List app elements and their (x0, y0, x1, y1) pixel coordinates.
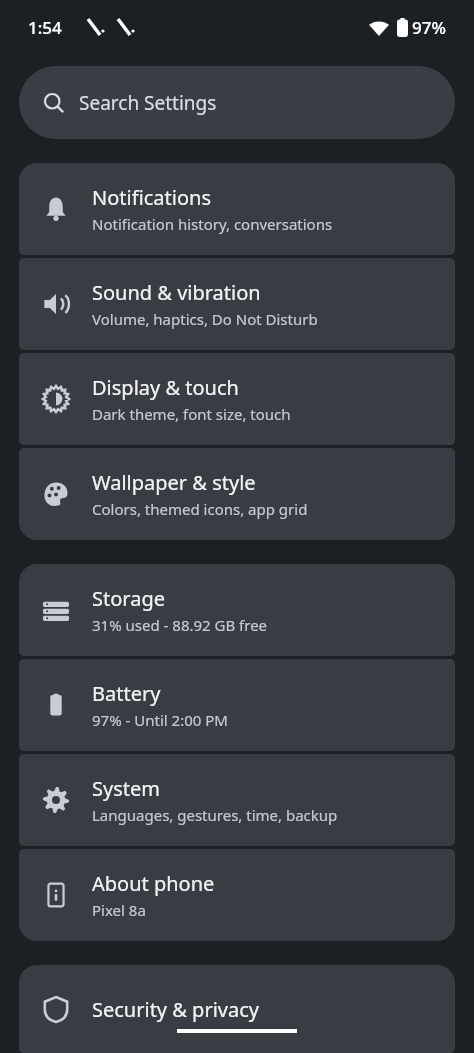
button[interactable]: Battery (19, 659, 455, 751)
button[interactable]: Search Settings (19, 66, 455, 139)
staticText: About phone (92, 870, 215, 897)
staticText: Display & touch (92, 374, 239, 401)
staticText: Pixel 8a (92, 900, 146, 920)
staticText: 1:54 (28, 16, 62, 39)
button[interactable]: Display & touch (19, 353, 455, 445)
button[interactable]: Notifications (19, 163, 455, 255)
staticText: Security & privacy (92, 996, 259, 1023)
staticText: Storage (92, 585, 165, 612)
staticText: Volume, haptics, Do Not Disturb (92, 309, 318, 329)
button[interactable]: System (19, 754, 455, 846)
button[interactable]: Wallpaper & style (19, 448, 455, 540)
staticText: System (92, 775, 160, 802)
staticText: Notifications (92, 184, 211, 211)
staticText: Wallpaper & style (92, 469, 256, 496)
staticText: Dark theme, font size, touch (92, 404, 291, 424)
staticText: Sound & vibration (92, 279, 261, 306)
button[interactable]: Storage (19, 564, 455, 656)
staticText: 31% used - 88.92 GB free (92, 615, 268, 635)
button[interactable]: About phone (19, 849, 455, 941)
staticText: Languages, gestures, time, backup (92, 805, 338, 825)
staticText: 97% - Until 2:00 PM (92, 710, 228, 730)
button[interactable]: Sound & vibration (19, 258, 455, 350)
staticText: Notification history, conversations (92, 214, 333, 234)
staticText: Colors, themed icons, app grid (92, 499, 308, 519)
staticText: 97% (412, 16, 446, 39)
staticText: Search Settings (79, 90, 217, 116)
button[interactable]: Security & privacy (19, 965, 455, 1053)
staticText: Battery (92, 680, 161, 707)
